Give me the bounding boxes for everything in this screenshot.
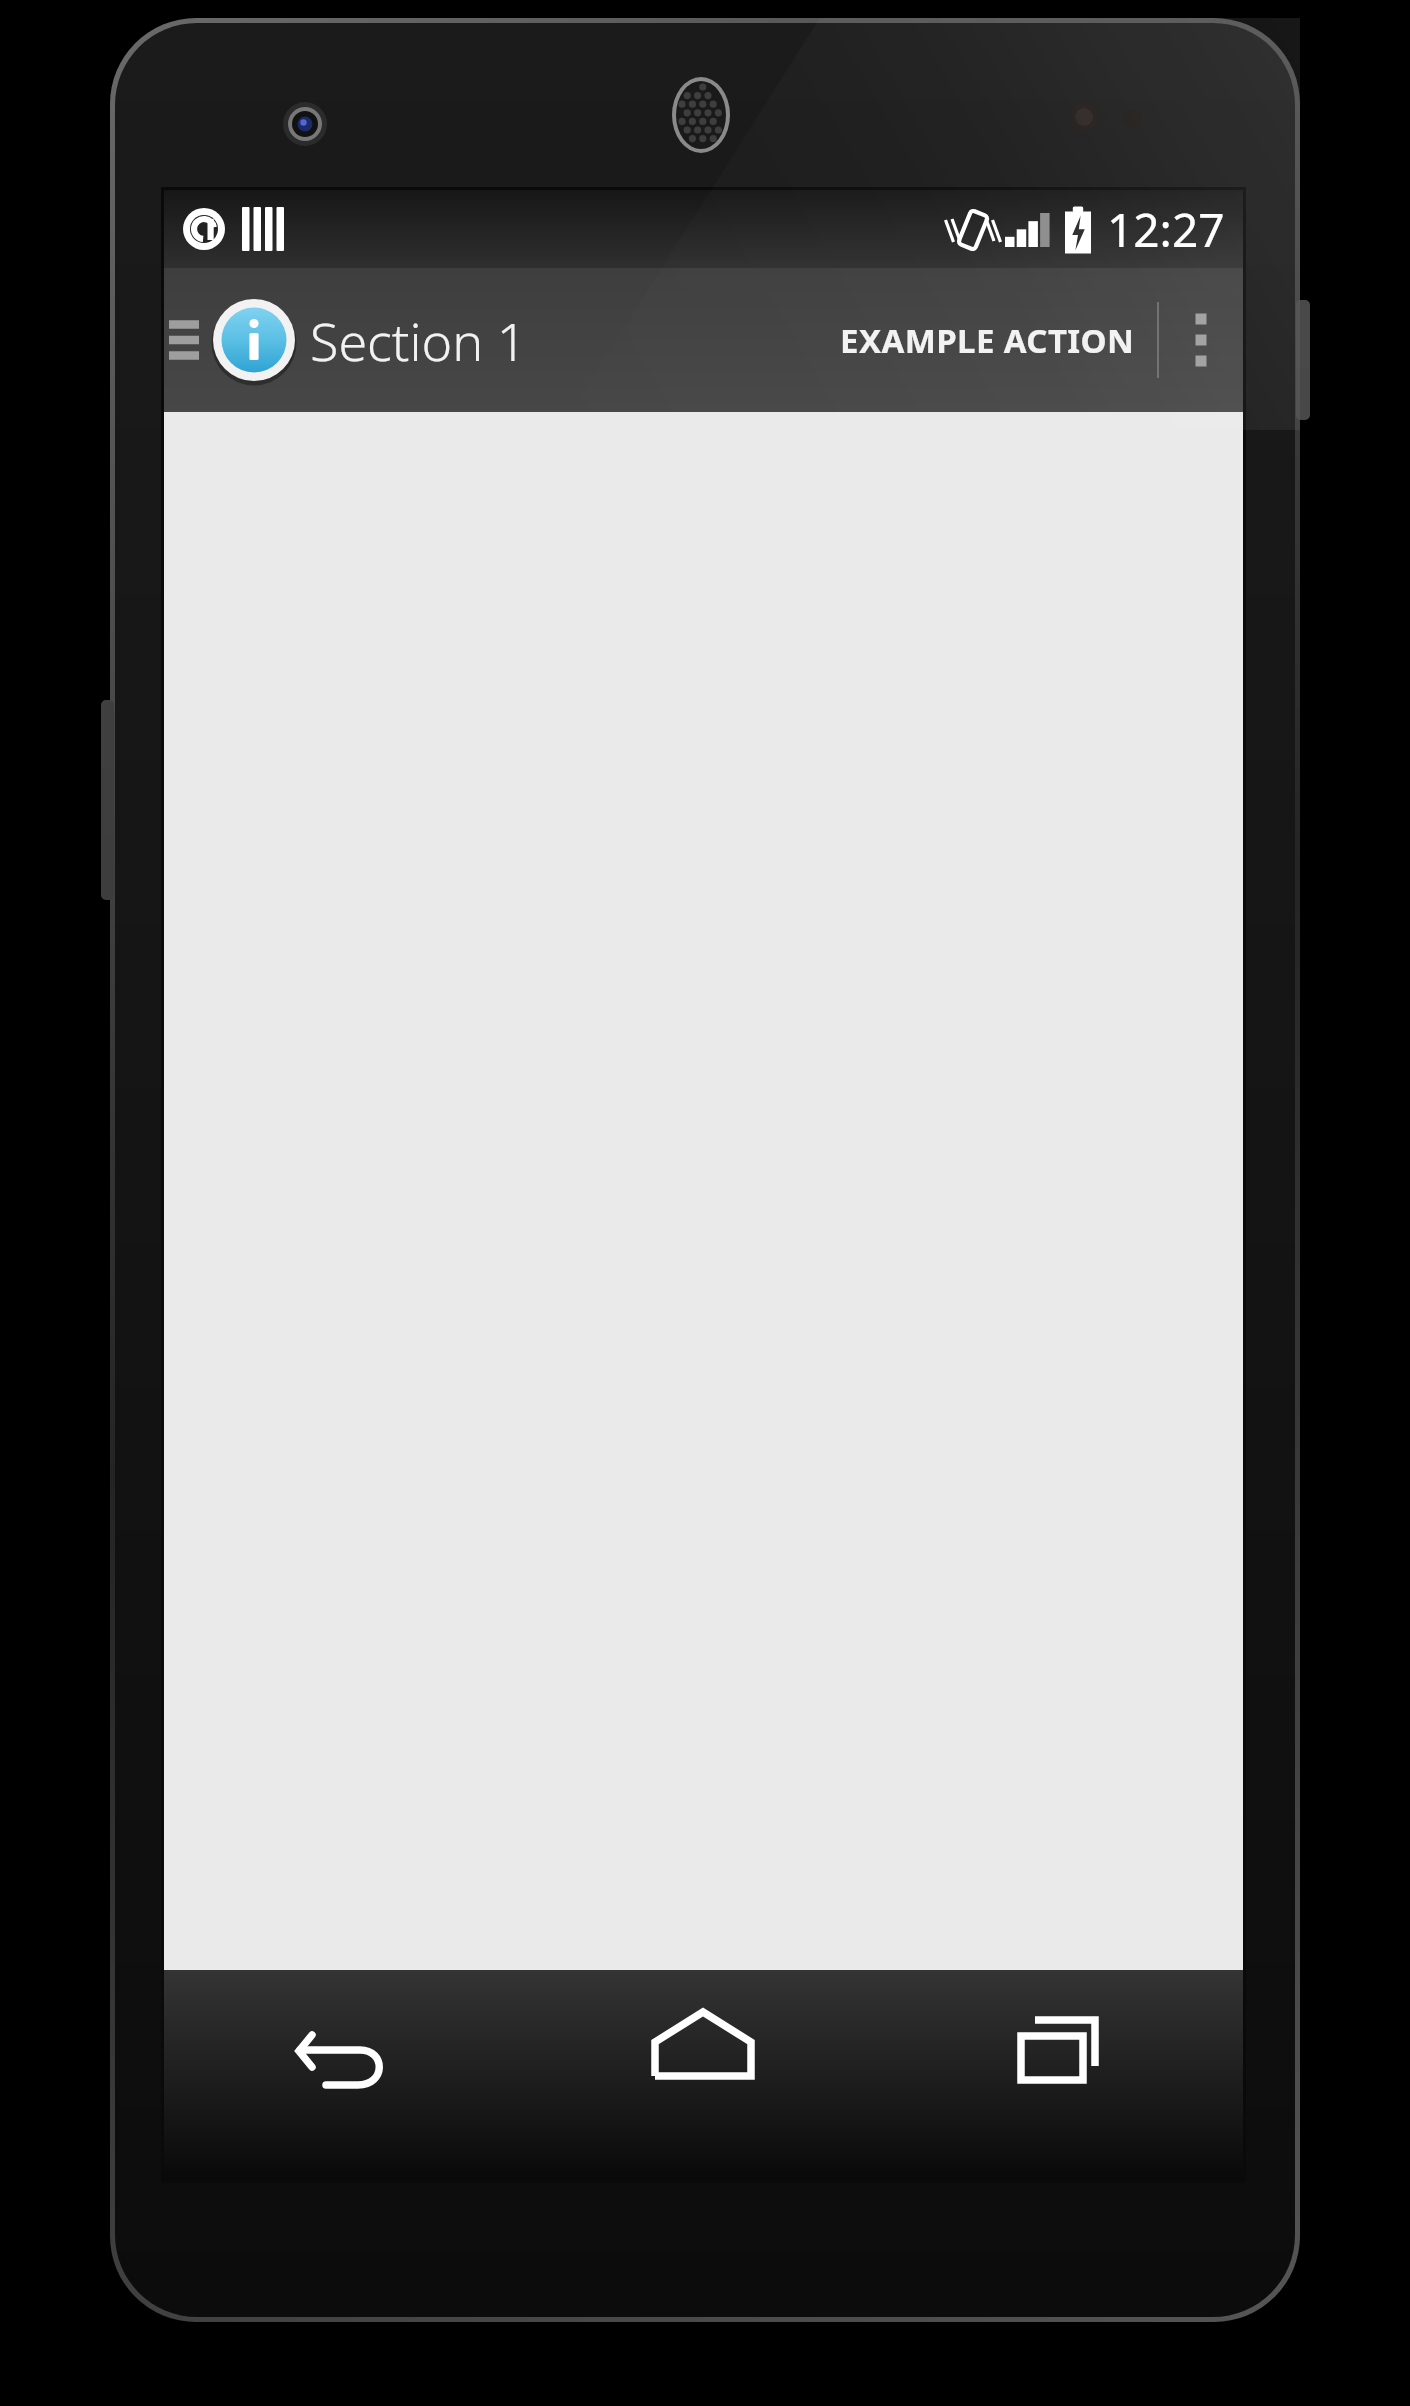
button[interactable]: EXAMPLE ACTION xyxy=(818,268,1157,412)
button[interactable]: Open navigation drawer xyxy=(164,296,535,384)
button[interactable]: Recent apps xyxy=(883,1970,1243,2120)
staticText: 12:27 xyxy=(1107,198,1225,261)
button[interactable]: Back xyxy=(164,1970,523,2120)
button[interactable]: Home xyxy=(523,1970,883,2120)
other: Open navigation drawer xyxy=(168,303,210,377)
staticText: Section 1 xyxy=(310,305,527,376)
button[interactable]: More options xyxy=(1159,268,1243,412)
staticText: EXAMPLE ACTION xyxy=(840,318,1135,363)
